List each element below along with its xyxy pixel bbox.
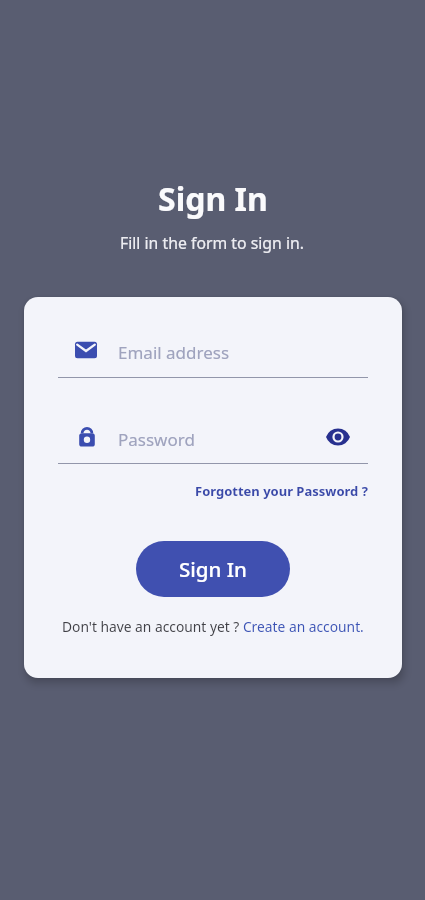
staticText: Email address xyxy=(118,341,230,364)
button[interactable] xyxy=(326,425,350,449)
staticText: Password xyxy=(118,428,195,451)
button[interactable]: Sign In xyxy=(136,541,290,597)
button[interactable]: Don't have an account yet ? Create an ac… xyxy=(24,614,402,638)
button[interactable]: Forgotten your Password ? xyxy=(195,482,368,500)
staticText: Sign In xyxy=(179,555,247,583)
staticText: Fill in the form to sign in. xyxy=(120,232,305,254)
staticText: Sign In xyxy=(158,177,268,221)
staticText: Don't have an account yet ? Create an ac… xyxy=(62,617,364,636)
